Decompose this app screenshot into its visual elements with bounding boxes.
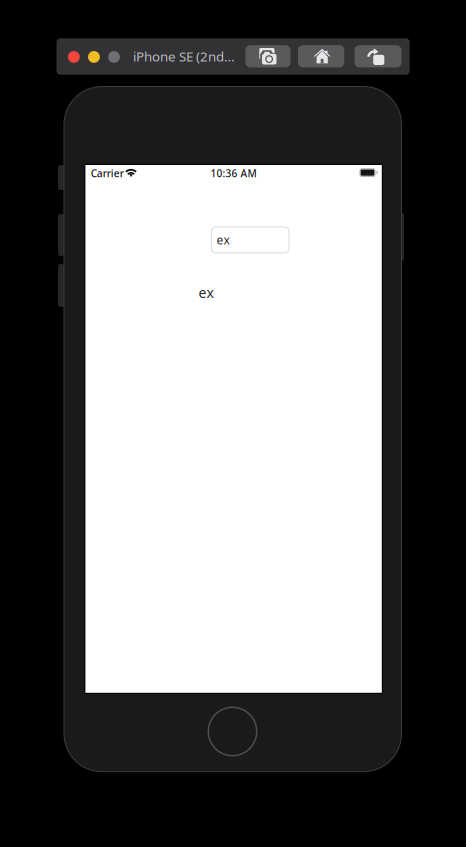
button[interactable]: Screenshot: [245, 45, 290, 67]
staticText: ex: [199, 283, 214, 302]
staticText: iPhone SE (2nd…: [133, 47, 235, 65]
staticText: 10:36 AM: [211, 166, 257, 180]
button[interactable]: Home: [298, 45, 344, 67]
button[interactable]: Rotate: [354, 45, 401, 67]
staticText: ex: [217, 232, 230, 248]
staticText: Carrier: [91, 166, 124, 180]
